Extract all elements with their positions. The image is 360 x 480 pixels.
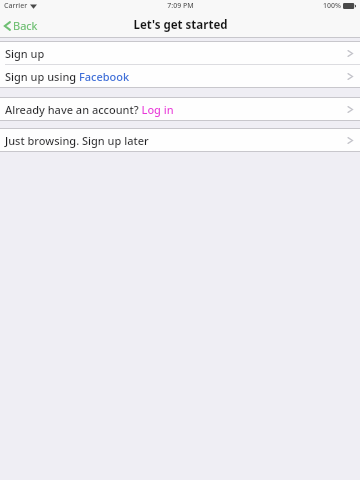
staticText: Let's get started: [133, 17, 228, 33]
staticText: Sign up using Facebook: [5, 69, 130, 84]
button[interactable]: Back: [0, 16, 44, 35]
staticText: 7:09 PM: [167, 1, 194, 11]
button[interactable]: Sign up: [0, 42, 360, 64]
button[interactable]: Just browsing. Sign up later: [0, 129, 360, 151]
staticText: Already have an account? Log in: [5, 102, 174, 117]
staticText: Back: [13, 18, 38, 33]
staticText: Sign up: [5, 46, 45, 61]
staticText: 100%: [323, 1, 341, 11]
other: Back: [4, 20, 11, 32]
button[interactable]: Already have an account? Log in: [0, 98, 360, 120]
button[interactable]: Sign up using Facebook: [0, 65, 360, 87]
staticText: Just browsing. Sign up later: [5, 133, 149, 148]
staticText: Carrier: [4, 1, 28, 11]
